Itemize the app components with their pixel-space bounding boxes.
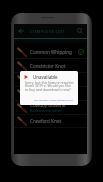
staticText: Unavailable <box>33 74 58 80</box>
staticText: Cow Hitch <box>30 77 52 83</box>
staticText: Cowboy Bowline <box>30 102 66 108</box>
button[interactable]: Cow Hitch with Toggle <box>14 87 87 101</box>
button[interactable]: Constrictor Knot <box>14 59 87 73</box>
button[interactable]: Back <box>16 24 25 38</box>
staticText: Constrictor Knot <box>30 63 66 69</box>
button[interactable]: Common Whipping <box>14 45 87 59</box>
button[interactable]: Cow Hitch <box>14 73 87 87</box>
button[interactable]: Cowboy Bowline <box>14 101 87 115</box>
button[interactable]: Search <box>75 24 85 38</box>
staticText: Sorry, but this feature requires Knots 3… <box>25 80 74 92</box>
button[interactable]: NO THANKS <box>33 97 50 102</box>
staticText: Common Whipping <box>30 49 72 55</box>
staticText: NO THANKS <box>34 98 49 101</box>
button[interactable]: Crawford Knot <box>14 115 87 128</box>
staticText: Bowline variation <box>30 108 63 113</box>
staticText: VISIT GOOGLE PLAY <box>50 98 74 101</box>
staticText: Crawford Knot <box>30 118 62 124</box>
button[interactable]: VISIT GOOGLE PLAY <box>49 97 75 102</box>
staticText: COMPLETE LIST <box>30 28 66 34</box>
